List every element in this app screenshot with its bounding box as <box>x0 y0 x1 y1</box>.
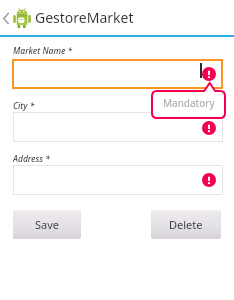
staticText: Delete <box>169 217 203 232</box>
button[interactable] <box>12 59 223 89</box>
button[interactable]: Back <box>0 0 12 35</box>
button[interactable]: Mandatory field error <box>202 173 216 187</box>
button[interactable]: Mandatory field error <box>202 67 216 81</box>
button[interactable]: Save <box>13 210 81 239</box>
staticText: Market Name * <box>13 45 73 57</box>
button[interactable] <box>13 112 223 142</box>
button[interactable] <box>13 165 223 195</box>
staticText: GestoreMarket <box>35 8 134 27</box>
staticText: Address * <box>13 153 50 165</box>
button[interactable]: Delete <box>151 210 221 239</box>
staticText: Save <box>35 217 60 232</box>
staticText: City * <box>13 100 35 112</box>
button[interactable]: Mandatory field error <box>202 121 216 135</box>
staticText: Mandatory <box>163 96 215 110</box>
